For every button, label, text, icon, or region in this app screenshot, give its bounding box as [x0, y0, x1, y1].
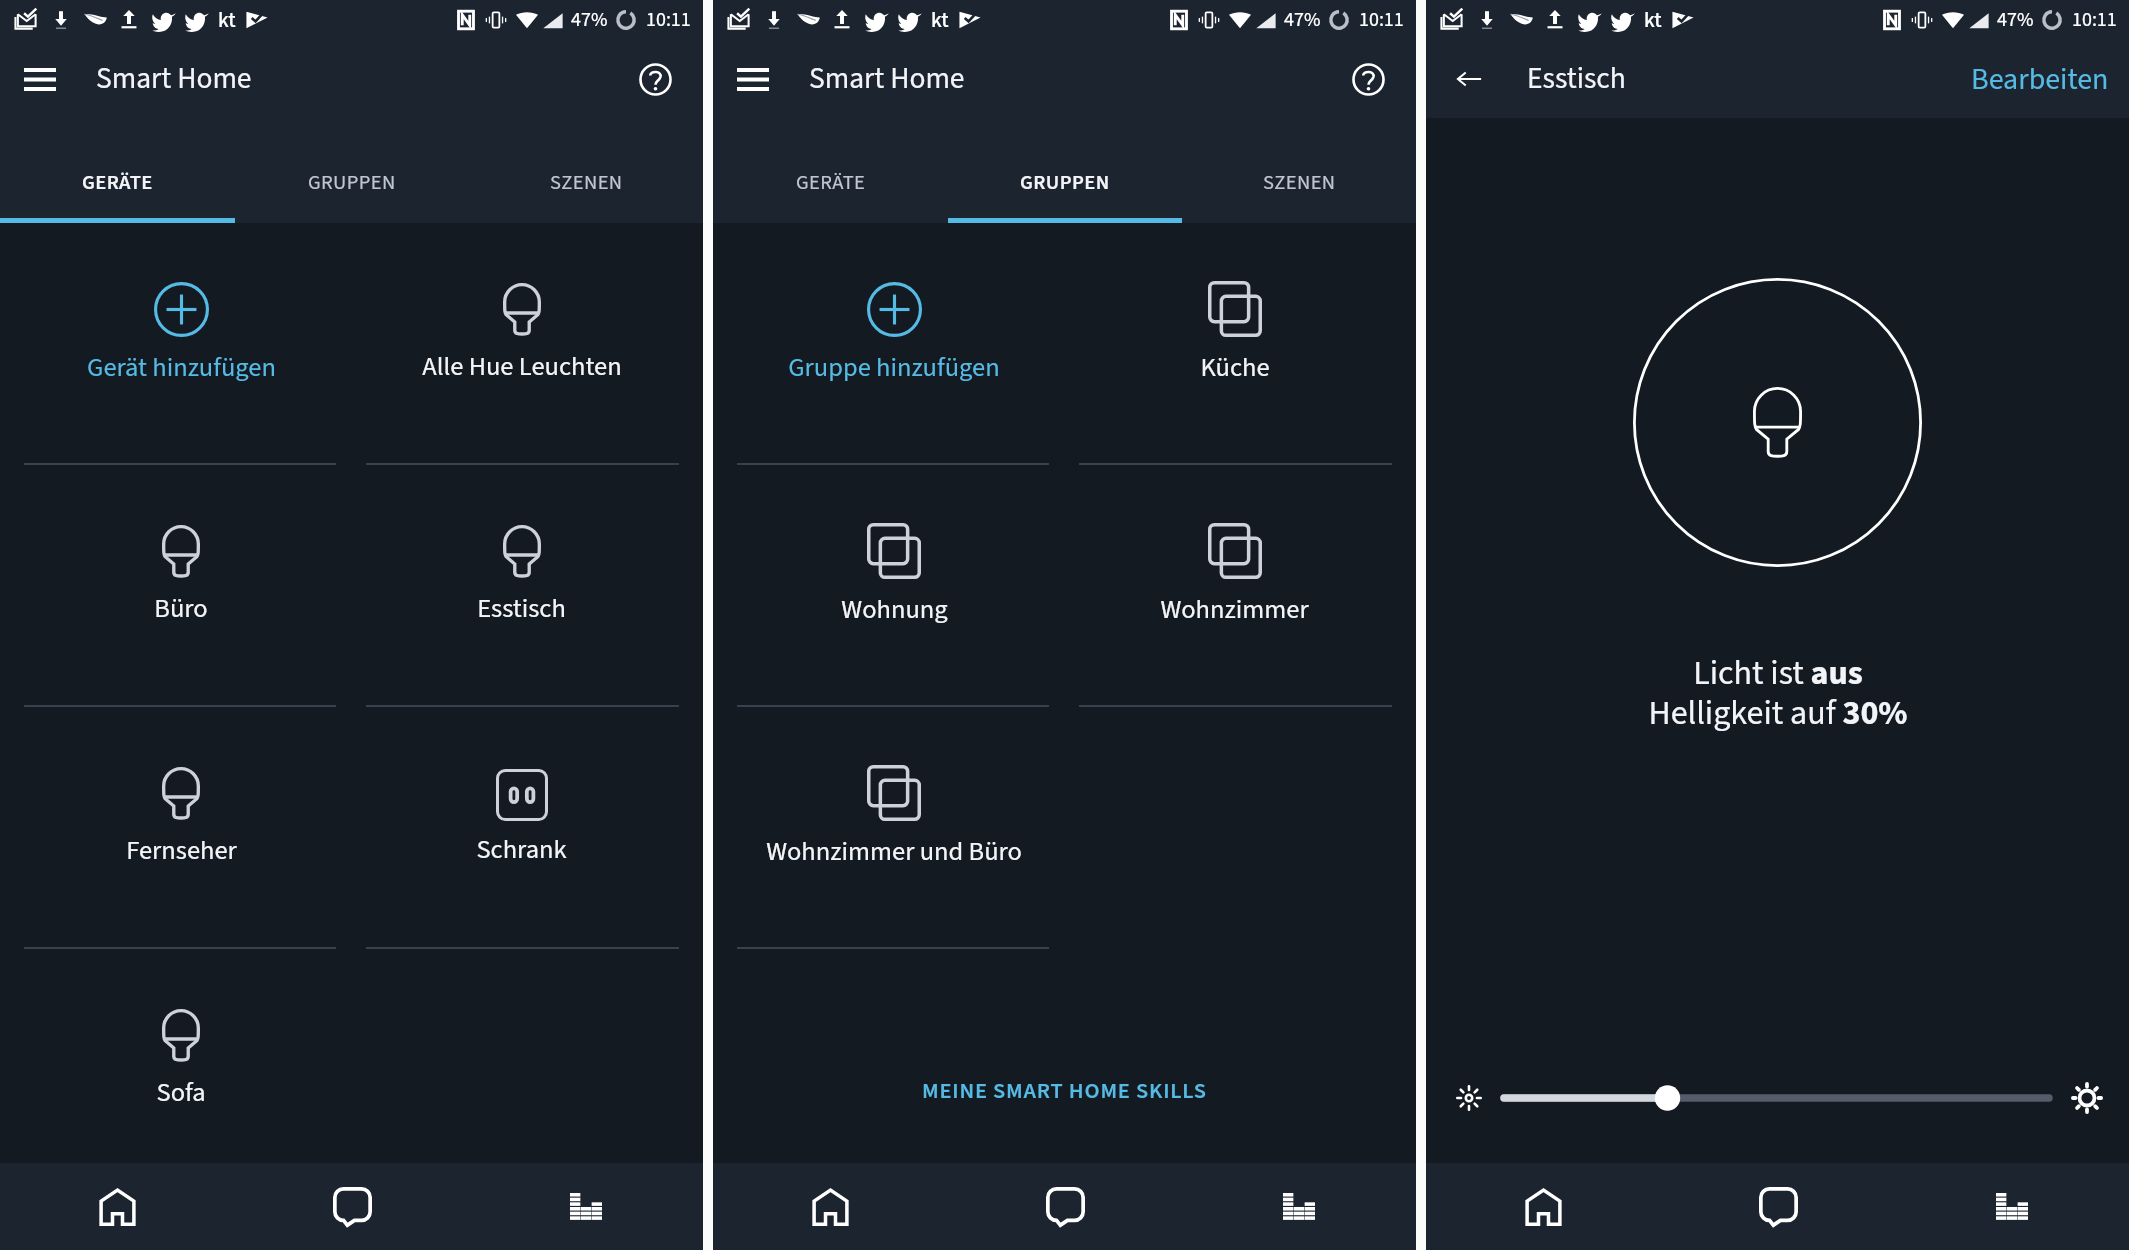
- button[interactable]: GRUPPEN: [235, 146, 469, 219]
- staticText: Bearbeiten: [1971, 58, 2109, 101]
- button[interactable]: Home: [713, 1163, 948, 1250]
- button[interactable]: Back: [1456, 68, 1483, 90]
- button[interactable]: MEINE SMART HOME SKILLS: [713, 1055, 1416, 1163]
- staticText: kt: [218, 5, 236, 35]
- button[interactable]: Wohnung: [724, 465, 1064, 707]
- button[interactable]: GERÄTE: [0, 146, 235, 219]
- staticText: Sofa: [156, 1074, 206, 1112]
- staticText: 10:11: [1359, 6, 1404, 34]
- button[interactable]: Brightness: [1500, 1081, 2053, 1115]
- button[interactable]: Büro: [11, 465, 351, 707]
- staticText: Wohnzimmer: [1160, 591, 1309, 629]
- staticText: Fernseher: [126, 832, 237, 870]
- button[interactable]: Schrank: [351, 707, 692, 949]
- button[interactable]: Play: [1895, 1163, 2129, 1250]
- button[interactable]: Sofa: [11, 949, 351, 1163]
- button[interactable]: Communicate: [1661, 1163, 1895, 1250]
- staticText: GRUPPEN: [308, 168, 396, 197]
- button[interactable]: Menu: [737, 68, 769, 91]
- button[interactable]: GRUPPEN: [948, 146, 1182, 219]
- staticText: 10:11: [646, 6, 691, 34]
- staticText: GERÄTE: [796, 168, 866, 197]
- staticText: Wohnung: [841, 591, 948, 629]
- button[interactable]: Fernseher: [11, 707, 351, 949]
- staticText: 47%: [1284, 6, 1321, 34]
- staticText: Esstisch: [1527, 58, 1626, 100]
- staticText: Gruppe hinzufügen: [788, 349, 1000, 387]
- button[interactable]: Wohnzimmer: [1064, 465, 1405, 707]
- button[interactable]: Gerät hinzufügen: [11, 223, 351, 465]
- button[interactable]: Alle Hue Leuchten: [351, 223, 692, 465]
- staticText: 10:11: [2072, 6, 2117, 34]
- button[interactable]: Menu: [24, 68, 56, 91]
- staticText: 47%: [1997, 6, 2034, 34]
- button[interactable]: Help: [639, 63, 672, 96]
- staticText: Alle Hue Leuchten: [422, 348, 622, 386]
- staticText: Smart Home: [96, 58, 252, 100]
- staticText: Büro: [154, 590, 208, 628]
- button[interactable]: Küche: [1064, 223, 1405, 465]
- staticText: GERÄTE: [82, 168, 153, 197]
- button[interactable]: SZENEN: [1182, 146, 1416, 219]
- button[interactable]: Home: [0, 1163, 235, 1250]
- button[interactable]: Play: [1182, 1163, 1416, 1250]
- staticText: Schrank: [476, 831, 567, 869]
- button[interactable]: Help: [1352, 63, 1385, 96]
- button[interactable]: GERÄTE: [713, 146, 948, 219]
- button[interactable]: Communicate: [948, 1163, 1182, 1250]
- staticText: kt: [931, 5, 949, 35]
- staticText: SZENEN: [550, 168, 623, 197]
- staticText: Licht ist aus Helligkeit auf 30%: [1648, 649, 1908, 738]
- staticText: Esstisch: [477, 590, 566, 628]
- staticText: kt: [1644, 5, 1662, 35]
- staticText: Küche: [1200, 349, 1270, 387]
- button[interactable]: Bearbeiten: [1961, 50, 2119, 109]
- button[interactable]: Wohnzimmer und Büro: [724, 707, 1064, 949]
- staticText: Gerät hinzufügen: [87, 349, 276, 387]
- button[interactable]: Communicate: [235, 1163, 469, 1250]
- button[interactable]: Gruppe hinzufügen: [724, 223, 1064, 465]
- button[interactable]: Esstisch: [351, 465, 692, 707]
- button[interactable]: Home: [1426, 1163, 1661, 1250]
- staticText: SZENEN: [1263, 168, 1336, 197]
- button[interactable]: Play: [469, 1163, 703, 1250]
- staticText: Smart Home: [809, 58, 965, 100]
- staticText: MEINE SMART HOME SKILLS: [922, 1075, 1207, 1107]
- staticText: GRUPPEN: [1020, 168, 1110, 197]
- button[interactable]: Toggle light: [1633, 278, 1922, 567]
- staticText: 47%: [571, 6, 608, 34]
- staticText: Wohnzimmer und Büro: [766, 833, 1022, 871]
- button[interactable]: SZENEN: [469, 146, 703, 219]
